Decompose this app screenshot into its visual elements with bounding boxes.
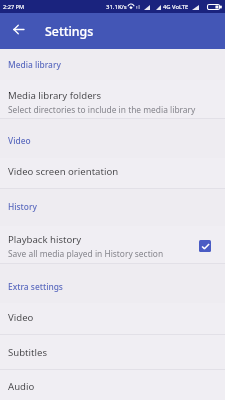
staticText: Video screen orientation <box>8 165 119 178</box>
staticText: Select directories to include in the med… <box>8 104 196 115</box>
staticText: Settings <box>45 23 94 40</box>
staticText: Extra settings <box>8 281 63 292</box>
button[interactable] <box>0 80 225 118</box>
staticText: Subtitles <box>8 346 47 359</box>
staticText: Video <box>8 135 31 146</box>
staticText: Audio <box>8 380 35 393</box>
staticText: History <box>8 201 37 212</box>
button[interactable]: Back <box>5 16 31 42</box>
staticText: Video <box>8 311 34 324</box>
button[interactable] <box>0 370 225 400</box>
button[interactable] <box>0 158 225 188</box>
staticText: Media library folders <box>8 89 102 102</box>
staticText: Media library <box>8 59 61 70</box>
staticText: 4G VoLTE <box>163 3 189 11</box>
staticText: Playback history <box>8 233 82 246</box>
button[interactable] <box>0 303 225 334</box>
button[interactable] <box>0 335 225 369</box>
button[interactable]: Toggle Playback history <box>199 240 211 252</box>
staticText: Save all media played in History section <box>8 248 164 259</box>
staticText: 31.1K/s <box>106 3 127 11</box>
button[interactable] <box>0 226 225 263</box>
staticText: 2:27 PM <box>3 3 25 11</box>
